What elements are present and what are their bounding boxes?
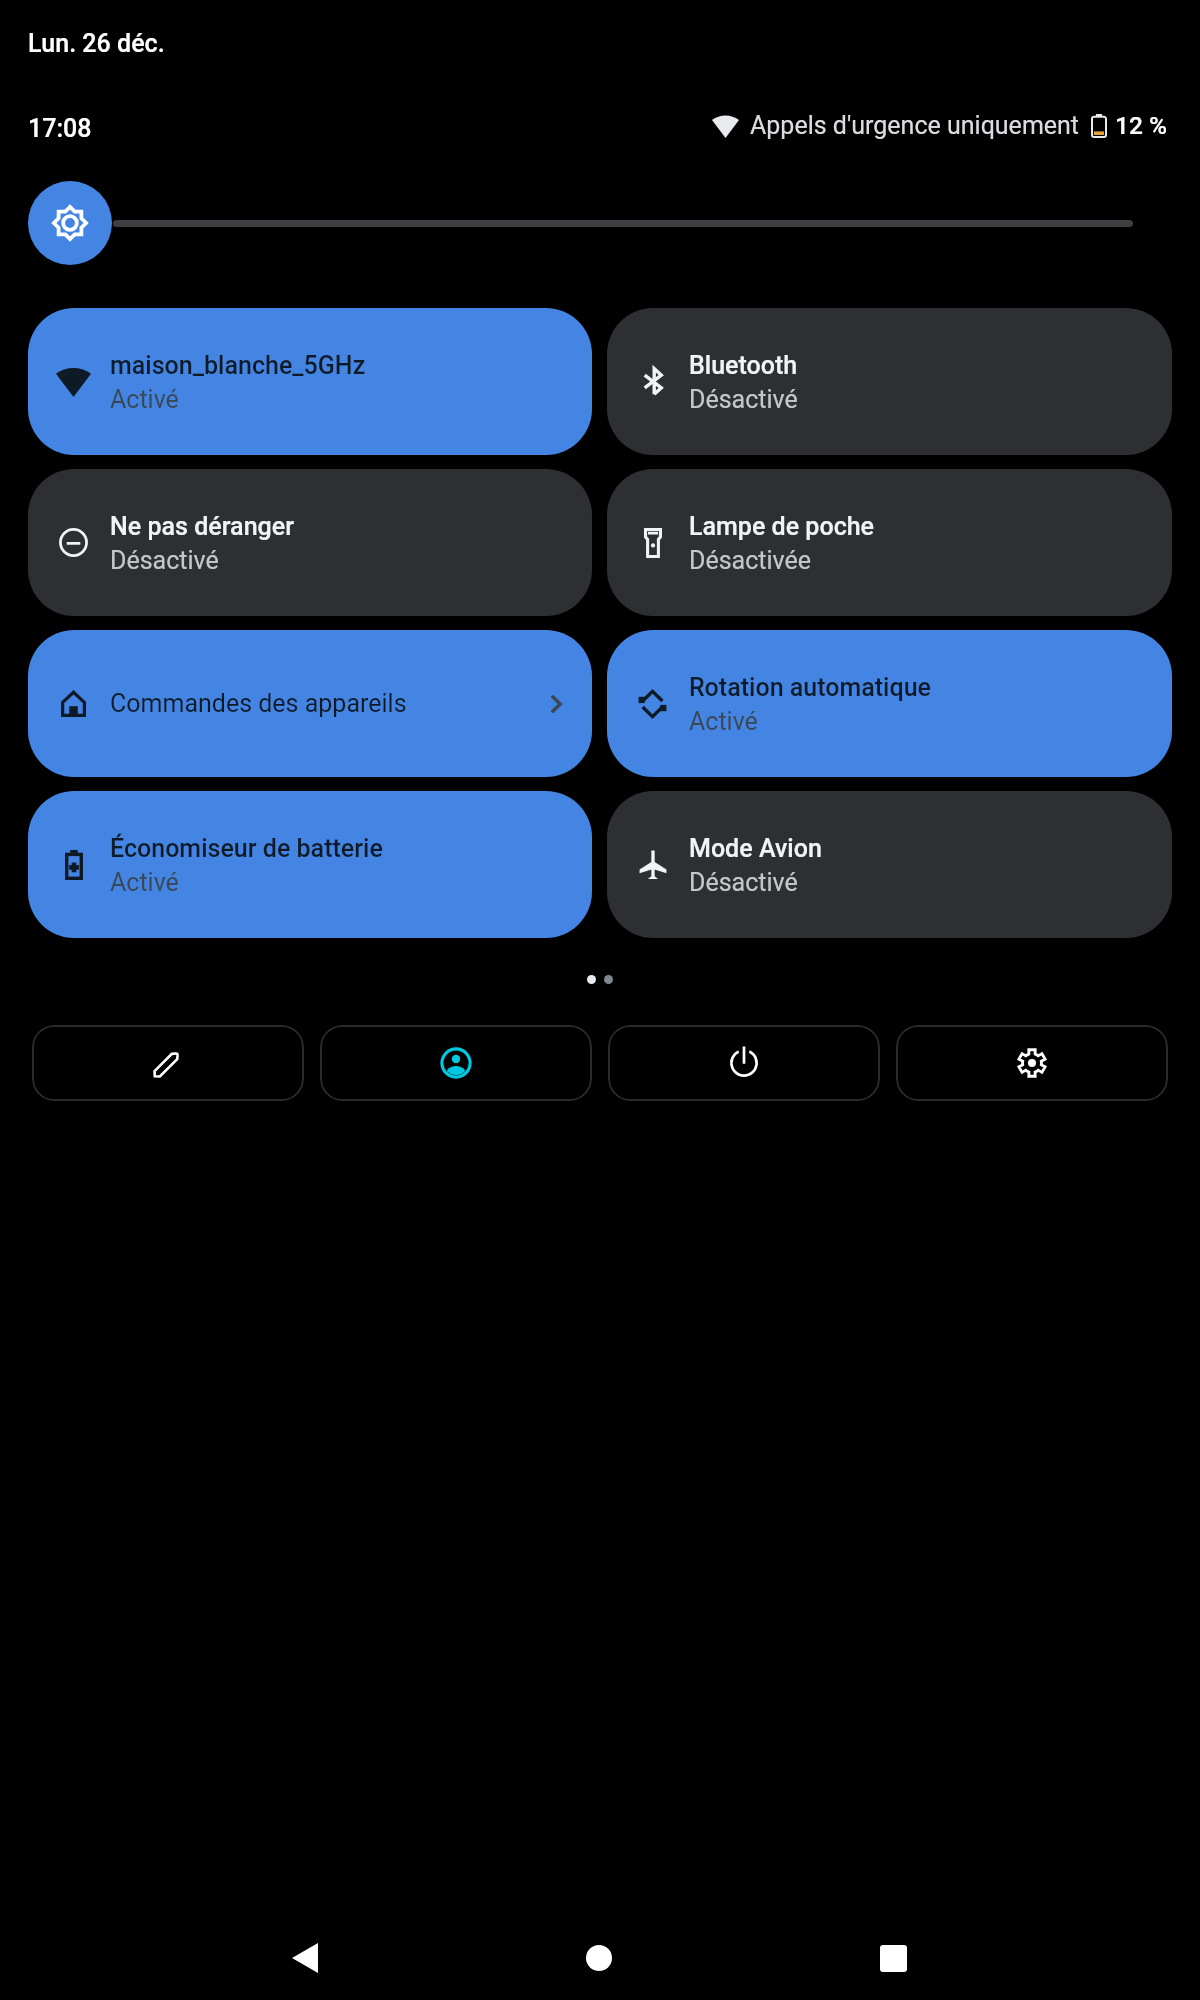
staticText: Désactivé [689, 868, 798, 897]
staticText: Ne pas déranger [110, 512, 294, 541]
button[interactable]: Brightness [28, 181, 112, 265]
staticText: maison_blanche_5GHz [110, 351, 366, 380]
staticText: Bluetooth [689, 351, 798, 380]
staticText: Commandes des appareils [110, 689, 407, 718]
button[interactable]: Edit [32, 1025, 304, 1101]
button[interactable]: Power [608, 1025, 880, 1101]
button[interactable]: Back [275, 1928, 335, 1988]
button[interactable]: Recent apps [863, 1928, 923, 1988]
staticText: Appels d'urgence uniquement [750, 111, 1080, 140]
staticText: Mode Avion [689, 834, 822, 863]
button[interactable]: Home [569, 1928, 629, 1988]
button[interactable]: Mode Avion [607, 791, 1172, 938]
button[interactable]: Rotation automatique [607, 630, 1172, 777]
staticText: Désactivé [110, 546, 219, 575]
staticText: Activé [689, 707, 758, 736]
staticText: Activé [110, 868, 179, 897]
staticText: Lampe de poche [689, 512, 875, 541]
staticText: Économiseur de batterie [110, 834, 383, 863]
button[interactable]: Ne pas déranger [28, 469, 592, 616]
staticText: Rotation automatique [689, 673, 931, 702]
button[interactable]: Settings [896, 1025, 1168, 1101]
staticText: 12 % [1115, 111, 1167, 140]
staticText: 17:08 [28, 114, 92, 143]
staticText: Désactivée [689, 546, 811, 575]
button[interactable]: Lampe de poche [607, 469, 1172, 616]
button[interactable]: maison_blanche_5GHz [28, 308, 592, 455]
button[interactable]: Économiseur de batterie [28, 791, 592, 938]
button[interactable]: User [320, 1025, 592, 1101]
staticText: Activé [110, 385, 179, 414]
button[interactable]: Bluetooth [607, 308, 1172, 455]
button[interactable]: Commandes des appareils [28, 630, 592, 777]
staticText: Désactivé [689, 385, 798, 414]
staticText: Lun. 26 déc. [28, 29, 165, 58]
